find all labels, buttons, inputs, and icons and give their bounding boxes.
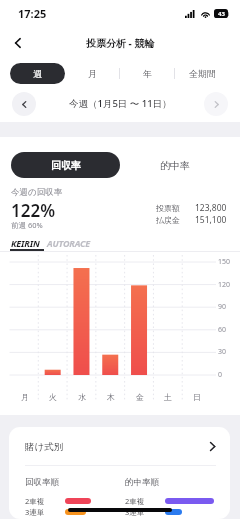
staticText: 日: [193, 392, 201, 402]
button[interactable]: 賭け式別: [9, 427, 230, 466]
staticText: 2車複: [25, 496, 45, 506]
staticText: 150: [218, 257, 231, 267]
staticText: 火: [49, 392, 57, 402]
staticText: 月: [88, 68, 97, 79]
button[interactable]: 月: [65, 63, 119, 84]
staticText: 123,800: [195, 202, 227, 213]
staticText: 全期間: [189, 68, 216, 79]
staticText: 水: [78, 392, 86, 402]
staticText: 投票額: [156, 203, 180, 213]
staticText: 的中率: [160, 159, 190, 172]
button[interactable]: 全期間: [175, 63, 229, 84]
staticText: 的中率順: [125, 477, 159, 488]
button[interactable]: AUTORACE: [47, 237, 90, 249]
staticText: 週: [33, 68, 42, 79]
button[interactable]: Back: [5, 30, 31, 56]
staticText: AUTORACE: [47, 237, 90, 249]
staticText: 17:25: [18, 6, 47, 21]
staticText: 賭け式別: [25, 441, 64, 453]
staticText: 今週の回収率: [11, 187, 63, 198]
staticText: 回収率順: [25, 477, 59, 488]
staticText: KEIRIN: [11, 237, 40, 249]
staticText: 122%: [11, 199, 56, 221]
staticText: 前週 60%: [11, 220, 43, 230]
staticText: 3連単: [125, 507, 145, 517]
button[interactable]: 週: [10, 63, 65, 84]
staticText: 年: [143, 68, 152, 79]
button[interactable]: Previous week: [12, 92, 36, 116]
staticText: 投票分析 - 競輪: [86, 36, 155, 50]
staticText: 43: [218, 10, 225, 18]
button[interactable]: 年: [120, 63, 174, 84]
button[interactable]: Next week: [204, 92, 228, 116]
staticText: 151,100: [195, 214, 227, 225]
staticText: 60: [218, 325, 227, 335]
button[interactable]: 回収率: [11, 152, 120, 178]
staticText: 今週（1月5日 〜 11日）: [69, 97, 172, 110]
staticText: 木: [107, 392, 115, 402]
staticText: 回収率: [51, 159, 81, 172]
staticText: 90: [218, 302, 227, 312]
staticText: 月: [21, 392, 29, 402]
staticText: 30: [218, 347, 227, 357]
staticText: 120: [218, 280, 231, 290]
staticText: 金: [136, 392, 144, 402]
button[interactable]: 的中率: [120, 152, 229, 178]
button[interactable]: KEIRIN: [11, 237, 40, 249]
staticText: 土: [164, 392, 172, 402]
staticText: 2車複: [125, 496, 145, 506]
staticText: 3連単: [25, 507, 45, 517]
staticText: 払戻金: [156, 215, 180, 225]
staticText: 0: [218, 370, 223, 380]
